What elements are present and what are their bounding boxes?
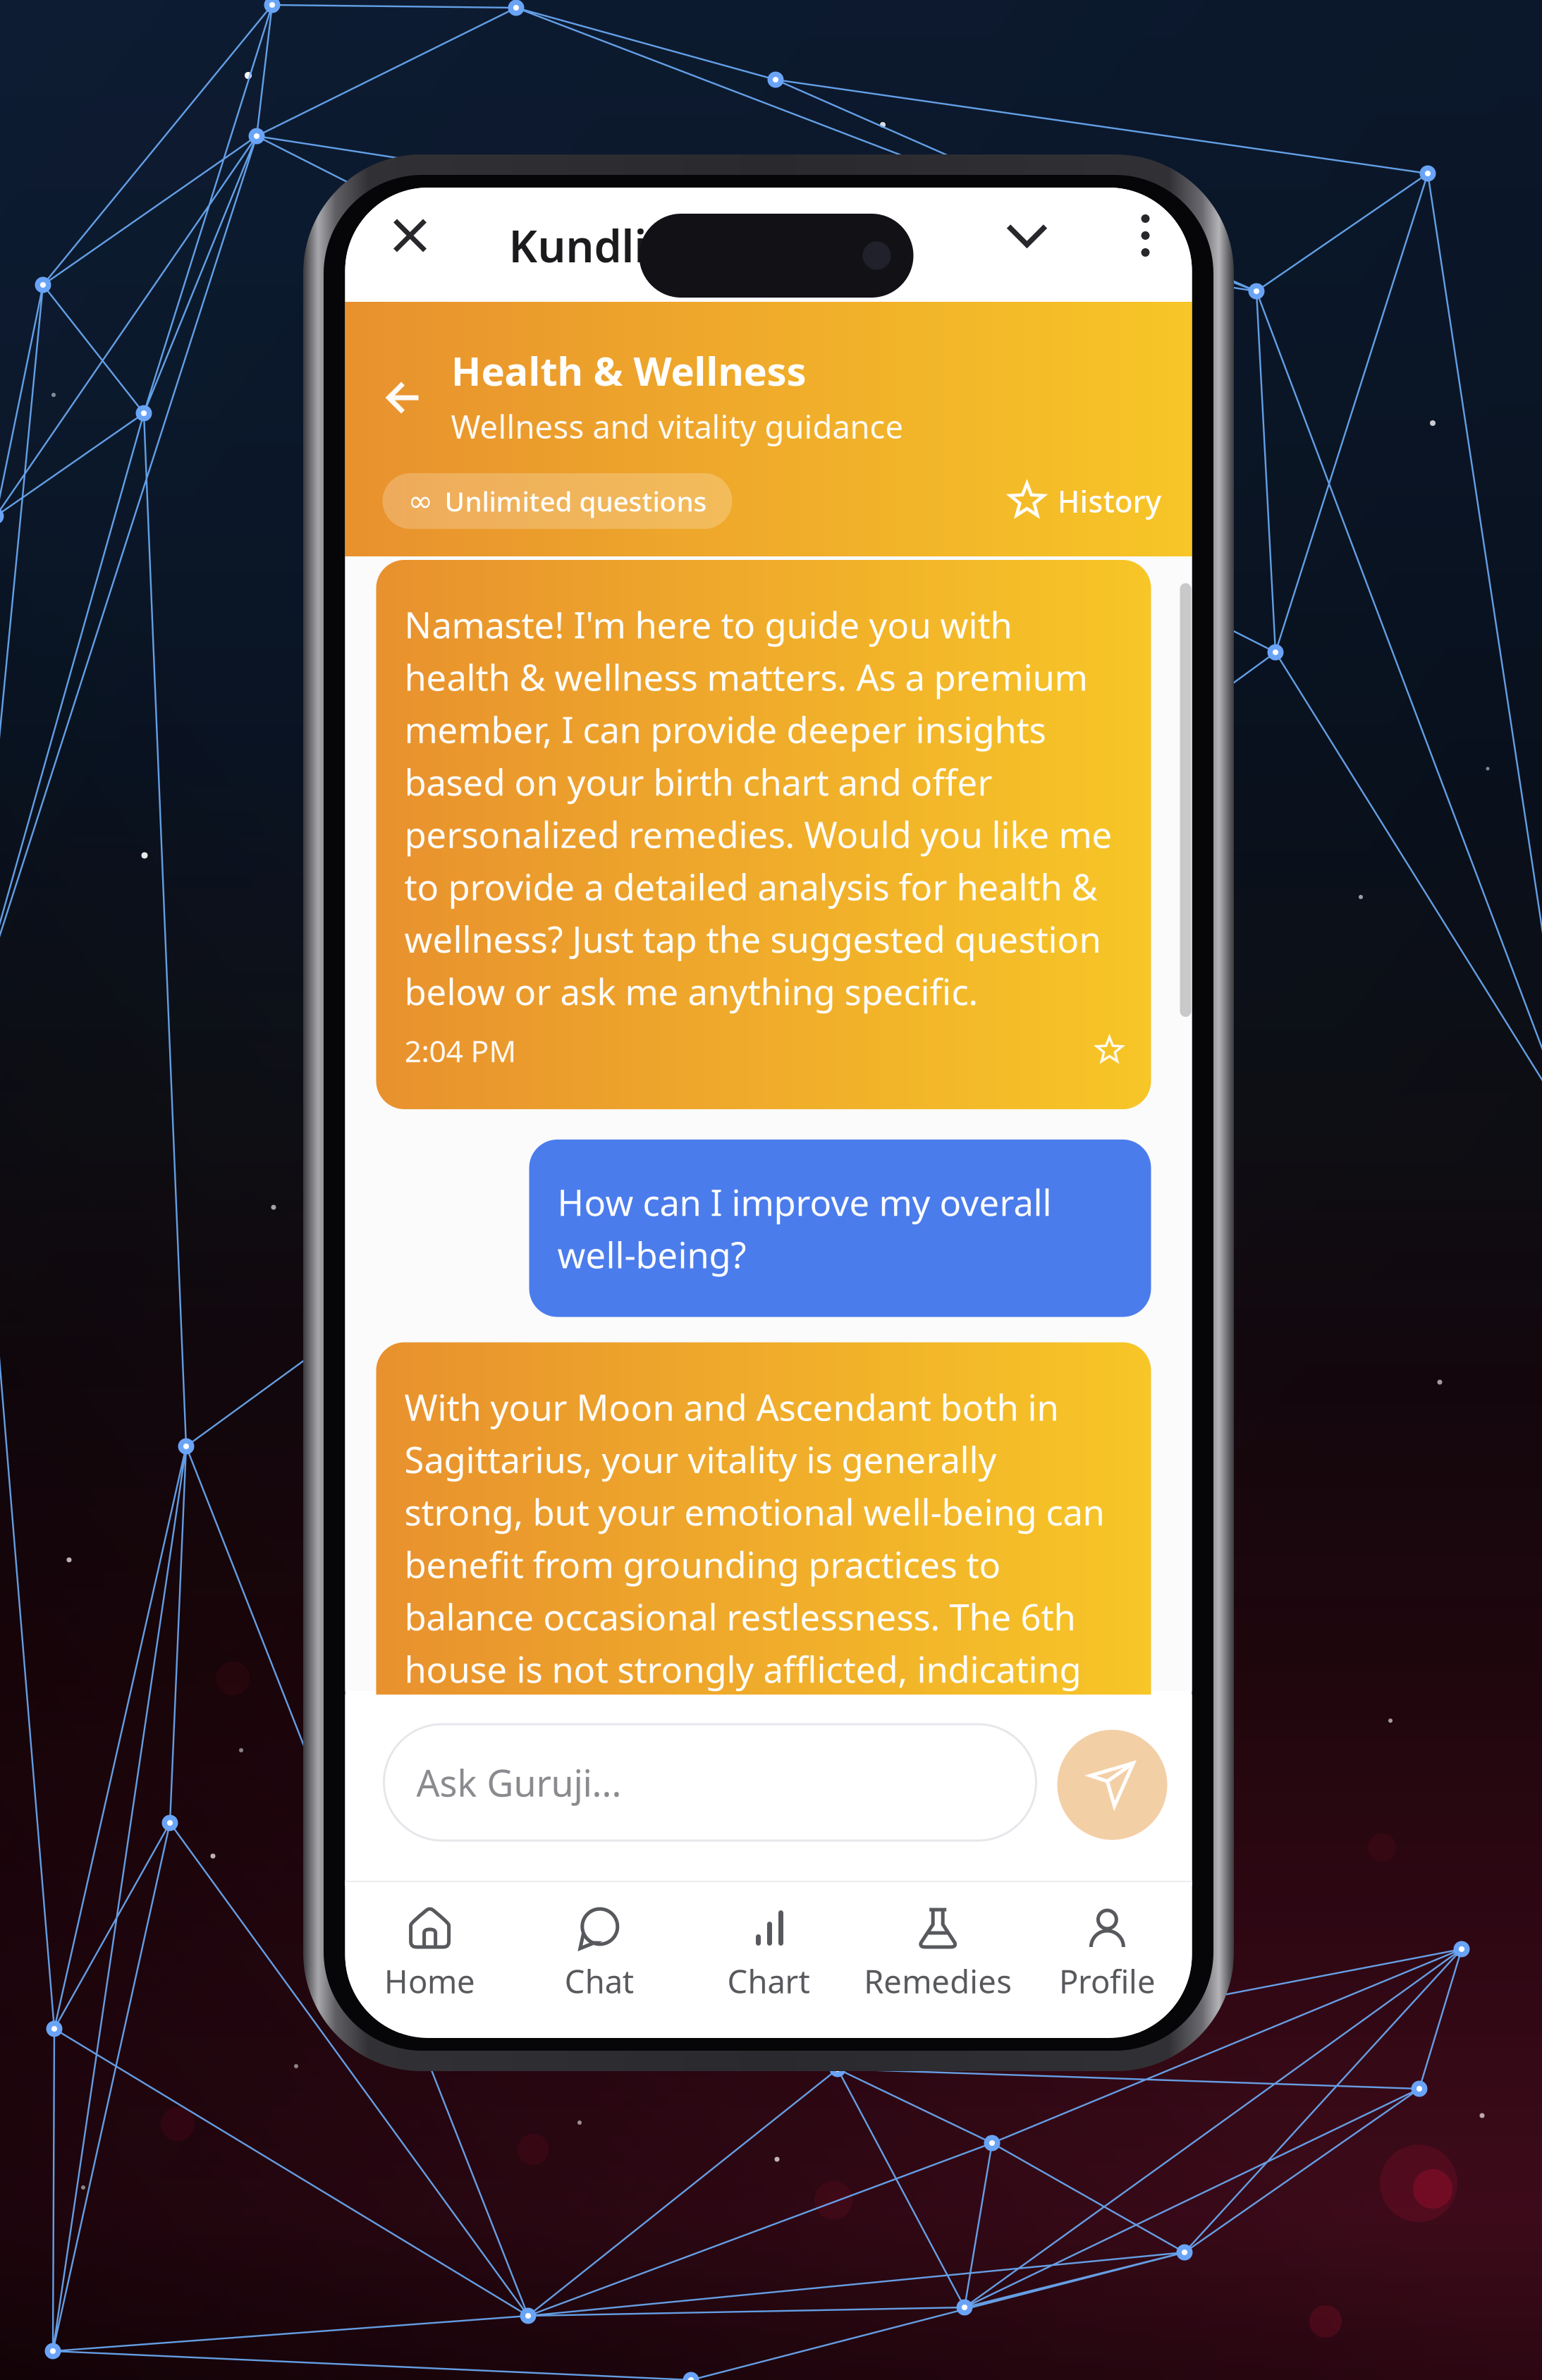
- staticText: Ask Guruji...: [416, 1758, 622, 1807]
- button[interactable]: More options: [1114, 199, 1177, 272]
- button[interactable]: Home: [345, 1906, 514, 2043]
- staticText: Unlimited questions: [445, 483, 707, 519]
- staticText: 2:04 PM: [404, 1030, 516, 1070]
- button[interactable]: Chat: [514, 1906, 684, 2043]
- button[interactable]: Profile: [1023, 1906, 1192, 2043]
- button[interactable]: Ask Guruji...: [384, 1724, 1036, 1841]
- staticText: Chart: [727, 1960, 810, 2002]
- staticText: How can I improve my overall well-being?: [557, 1178, 1052, 1278]
- staticText: KundliWise AI: [509, 216, 807, 274]
- staticText: Wellness and vitality guidance: [451, 405, 904, 448]
- staticText: ∞: [408, 484, 433, 518]
- staticText: History: [1057, 481, 1162, 521]
- staticText: Health & Wellness: [451, 344, 806, 397]
- button[interactable]: Save message: [1096, 1037, 1123, 1064]
- staticText: Profile: [1059, 1960, 1156, 2002]
- staticText: Namaste! I'm here to guide you with heal…: [404, 601, 1112, 1015]
- button[interactable]: Close: [373, 199, 447, 272]
- staticText: Home: [384, 1960, 475, 2002]
- staticText: With your Moon and Ascendant both in Sag…: [404, 1383, 1116, 1797]
- staticText: Chat: [565, 1960, 634, 2002]
- button[interactable]: History: [1009, 473, 1162, 529]
- button[interactable]: Send: [1057, 1730, 1167, 1840]
- button[interactable]: Collapse: [990, 199, 1064, 272]
- button[interactable]: Chart: [684, 1906, 853, 2043]
- button[interactable]: Remedies: [853, 1906, 1023, 2043]
- button[interactable]: Back: [373, 367, 435, 429]
- staticText: Remedies: [864, 1960, 1012, 2002]
